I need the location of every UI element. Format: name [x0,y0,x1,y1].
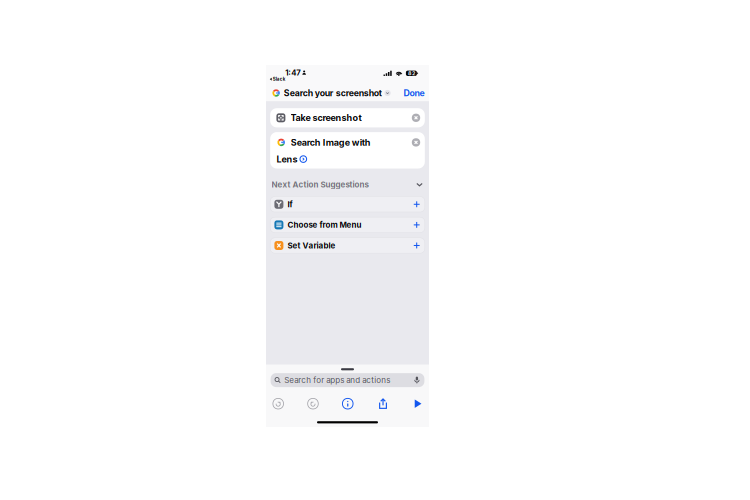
staticText: 1:47 [285,68,300,77]
staticText: Set Variable [287,241,335,250]
staticText: Choose from Menu [287,220,361,230]
button[interactable]: Undo [273,398,283,409]
staticText: If [287,199,292,209]
staticText: Search Image with [291,137,371,148]
staticText: Slack [273,76,286,82]
button[interactable]: Collapse suggestions [416,181,423,188]
staticText: Search your screenshot [284,88,382,98]
button[interactable]: Take screenshot [270,108,425,127]
button[interactable]: If [270,197,425,212]
button[interactable]: Set Variable [270,238,425,253]
button[interactable]: Done [403,88,424,98]
staticText: Next Action Suggestions [272,180,369,189]
staticText: Take screenshot [291,112,362,123]
button[interactable]: Redo [308,398,318,409]
button[interactable]: Info [342,398,353,409]
staticText: 82 [408,70,415,77]
staticText: Done [403,88,424,98]
staticText: Lens [276,154,297,165]
button[interactable]: Share [377,398,389,409]
button[interactable]: Search Image with [270,132,425,168]
staticText: Search for apps and actions [284,375,390,385]
button[interactable]: Choose from Menu [270,217,425,233]
button[interactable]: Run shortcut [413,399,423,408]
